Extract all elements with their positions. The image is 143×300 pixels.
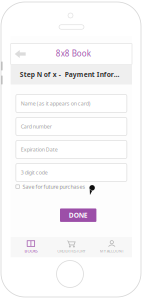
button[interactable]: Save for future purchases — [16, 184, 127, 190]
staticText: 8x8 Book — [56, 48, 91, 59]
button[interactable]: DONE — [60, 208, 96, 222]
button[interactable]: 3 digit code — [16, 163, 127, 181]
staticText: BOOKS — [24, 248, 37, 254]
button[interactable]: Card number — [16, 117, 127, 135]
button[interactable]: Name (as it appears on card) — [16, 94, 127, 112]
button[interactable]: Expiration Date — [16, 140, 127, 158]
staticText: Name (as it appears on card) — [21, 100, 91, 107]
staticText: Step N of x - Payment Information — [20, 70, 124, 79]
staticText: MY ACCOUNT — [100, 248, 124, 254]
staticText: Save for future purchases — [22, 183, 85, 190]
staticText: Expiration Date — [21, 146, 58, 153]
button[interactable]: MY ACCOUNT — [92, 237, 132, 257]
button[interactable]: Back — [11, 46, 30, 62]
staticText: DONE — [69, 211, 88, 220]
staticText: 3 digit code — [21, 169, 48, 176]
button[interactable]: BOOKS — [11, 237, 51, 257]
button[interactable]: ORDER HISTORY — [51, 237, 91, 257]
staticText: Card number — [21, 123, 52, 130]
staticText: ORDER HISTORY — [57, 248, 85, 254]
